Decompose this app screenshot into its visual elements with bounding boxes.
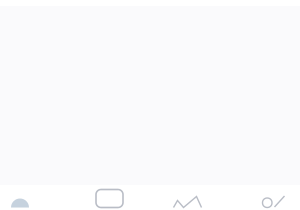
- button[interactable]: Trends: [150, 187, 225, 207]
- button[interactable]: Search: [225, 187, 300, 207]
- button[interactable]: Home: [0, 187, 75, 207]
- button[interactable]: Wallet: [75, 187, 150, 207]
